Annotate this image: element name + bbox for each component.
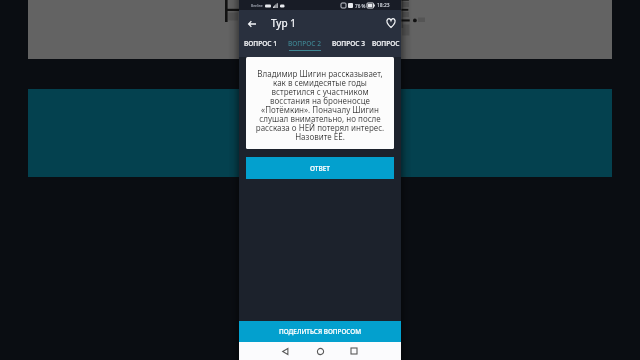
staticText: 18:23 bbox=[377, 2, 390, 9]
button[interactable]: ПОДЕЛИТЬСЯ ВОПРОСОМ bbox=[239, 321, 401, 342]
staticText: ОТВЕТ bbox=[310, 164, 331, 173]
staticText: ВОПРОС 2 bbox=[288, 39, 322, 48]
button[interactable]: Владимир Шигин рассказывает, как в семид… bbox=[246, 57, 394, 149]
button[interactable]: Home bbox=[311, 342, 329, 360]
button[interactable]: Back bbox=[276, 342, 294, 360]
staticText: ВОПРОС bbox=[372, 39, 400, 48]
button[interactable]: Favorite bbox=[383, 15, 399, 31]
button[interactable]: Recent apps bbox=[345, 342, 363, 360]
button[interactable]: ВОПРОС 2 bbox=[283, 38, 327, 57]
staticText: ВОПРОС 3 bbox=[332, 39, 366, 48]
button[interactable]: ОТВЕТ bbox=[246, 157, 394, 179]
button[interactable]: ВОПРОС bbox=[371, 38, 401, 57]
staticText: Beeline bbox=[251, 3, 263, 8]
staticText: ПОДЕЛИТЬСЯ ВОПРОСОМ bbox=[279, 327, 362, 336]
button[interactable]: ВОПРОС 3 bbox=[327, 38, 371, 57]
staticText: 76 % bbox=[355, 3, 366, 9]
staticText: Владимир Шигин рассказывает, как в семид… bbox=[253, 68, 387, 143]
button[interactable]: Back bbox=[244, 16, 260, 32]
staticText: Тур 1 bbox=[271, 16, 296, 30]
staticText: ВОПРОС 1 bbox=[244, 39, 278, 48]
button[interactable]: ВОПРОС 1 bbox=[239, 38, 283, 57]
